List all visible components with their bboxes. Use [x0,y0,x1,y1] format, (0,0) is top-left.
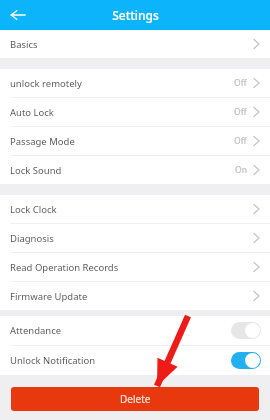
staticText: Basics [10,38,38,51]
staticText: Read Operation Records [10,261,119,274]
staticText: unlock remotely [10,77,82,90]
button[interactable]: Firmware Update [0,282,270,310]
button[interactable]: Diagnosis [0,224,270,253]
button[interactable]: Auto Lock [0,98,270,127]
button[interactable]: Read Operation Records [0,253,270,282]
staticText: Lock Sound [10,164,62,177]
staticText: Off [234,77,247,89]
staticText: Passage Mode [10,135,75,148]
staticText: Off [234,135,247,147]
button[interactable]: Back [0,0,36,30]
staticText: Auto Lock [10,106,54,119]
button[interactable]: Basics [0,30,270,58]
staticText: Firmware Update [10,290,88,303]
staticText: Diagnosis [10,232,54,245]
button[interactable]: Unlock Notification [0,346,270,375]
button[interactable]: Lock Clock [0,195,270,224]
staticText: Off [234,106,247,118]
staticText: On [235,164,247,176]
staticText: Settings [112,7,159,23]
button[interactable]: Lock Sound [0,156,270,184]
staticText: Delete [120,392,151,406]
staticText: Unlock Notification [10,354,96,367]
button[interactable]: Delete [11,387,259,411]
button[interactable]: Passage Mode [0,127,270,156]
button[interactable]: unlock remotely [0,69,270,98]
button[interactable]: Attendance [0,316,270,346]
staticText: Lock Clock [10,203,57,216]
staticText: Attendance [10,324,62,337]
